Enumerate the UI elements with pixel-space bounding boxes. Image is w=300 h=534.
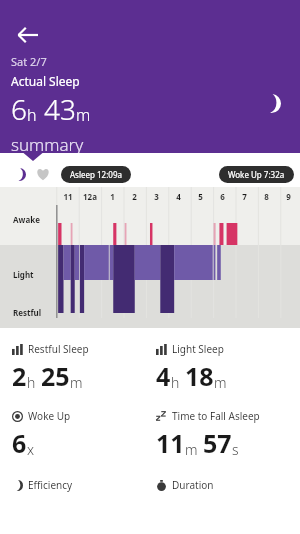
button[interactable]: Time to Fall Asleep <box>156 409 300 460</box>
staticText: Asleep 12:09a <box>70 169 122 180</box>
staticText: 9 <box>286 191 291 202</box>
button[interactable]: Sleep <box>11 166 27 182</box>
staticText: 6 <box>220 191 225 202</box>
staticText: Restful <box>13 307 42 318</box>
staticText: m <box>76 104 91 126</box>
staticText: Light Sleep <box>172 342 224 356</box>
staticText: m <box>185 440 198 459</box>
staticText: Time to Fall Asleep <box>172 409 260 423</box>
staticText: h <box>27 104 37 126</box>
staticText: 3 <box>154 191 159 202</box>
staticText: 43 <box>44 90 76 128</box>
staticText: h <box>27 373 36 392</box>
staticText: 1 <box>110 191 115 202</box>
staticText: 5 <box>198 191 203 202</box>
staticText: 57 <box>203 426 232 460</box>
staticText: Woke Up 7:32a <box>228 169 285 180</box>
staticText: x <box>27 440 35 459</box>
staticText: Actual Sleep <box>11 73 80 89</box>
staticText: 11 <box>156 426 185 460</box>
staticText: m <box>214 373 227 392</box>
staticText: summary <box>11 133 84 153</box>
staticText: 6 <box>12 426 27 460</box>
staticText: 12a <box>83 191 97 202</box>
staticText: Woke Up <box>28 409 71 423</box>
staticText: Restful Sleep <box>28 342 89 356</box>
staticText: m <box>70 373 83 392</box>
staticText: 2 <box>132 191 137 202</box>
button[interactable]: Light Sleep <box>156 342 300 393</box>
staticText: Duration <box>172 478 214 492</box>
staticText: 4 <box>176 191 181 202</box>
staticText: 6 <box>11 90 27 128</box>
other: Night <box>258 90 284 116</box>
staticText: Sat 2/7 <box>11 54 47 69</box>
staticText: 4 <box>156 359 171 393</box>
staticText: Efficiency <box>28 478 73 492</box>
staticText: 11 <box>63 191 73 202</box>
staticText: Light <box>13 269 34 280</box>
staticText: s <box>232 440 239 459</box>
button[interactable]: Asleep 12:09a <box>61 166 131 183</box>
button[interactable]: Heart rate <box>35 166 51 182</box>
button[interactable]: Woke Up 7:32a <box>219 166 294 183</box>
staticText: 18 <box>185 359 214 393</box>
button[interactable]: Duration <box>156 478 300 492</box>
button[interactable]: Restful Sleep <box>12 342 156 393</box>
button[interactable]: Efficiency <box>12 478 156 492</box>
button[interactable]: Back <box>9 16 47 54</box>
staticText: 2 <box>12 359 27 393</box>
staticText: 7 <box>242 191 247 202</box>
staticText: Awake <box>13 214 40 225</box>
staticText: 25 <box>41 359 70 393</box>
button[interactable]: Woke Up <box>12 409 156 460</box>
staticText: h <box>171 373 180 392</box>
staticText: 8 <box>264 191 269 202</box>
